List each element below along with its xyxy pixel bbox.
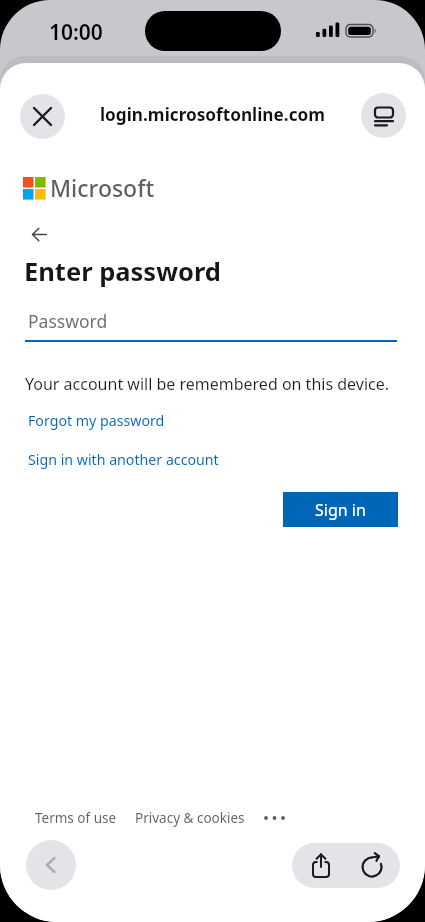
button[interactable] bbox=[20, 94, 65, 139]
button[interactable]: Forgot my password bbox=[28, 411, 165, 430]
staticText: Sign in bbox=[315, 499, 366, 521]
staticText: Microsoft bbox=[50, 172, 155, 203]
button[interactable] bbox=[26, 840, 76, 890]
button[interactable]: Sign in bbox=[283, 492, 398, 527]
staticText: Your account will be remembered on this … bbox=[25, 373, 390, 395]
staticText: Password bbox=[28, 309, 108, 333]
staticText: Enter password bbox=[24, 254, 221, 289]
button[interactable]: Privacy & cookies bbox=[135, 809, 245, 827]
staticText: login.microsoftonline.com bbox=[100, 103, 326, 126]
staticText: 10:00 bbox=[49, 18, 103, 47]
button[interactable] bbox=[263, 810, 287, 822]
button[interactable] bbox=[349, 843, 394, 888]
button[interactable]: Sign in with another account bbox=[28, 450, 219, 469]
button[interactable] bbox=[298, 843, 343, 888]
button[interactable]: Terms of use bbox=[35, 809, 117, 827]
button[interactable] bbox=[24, 219, 54, 249]
button[interactable] bbox=[361, 93, 406, 138]
